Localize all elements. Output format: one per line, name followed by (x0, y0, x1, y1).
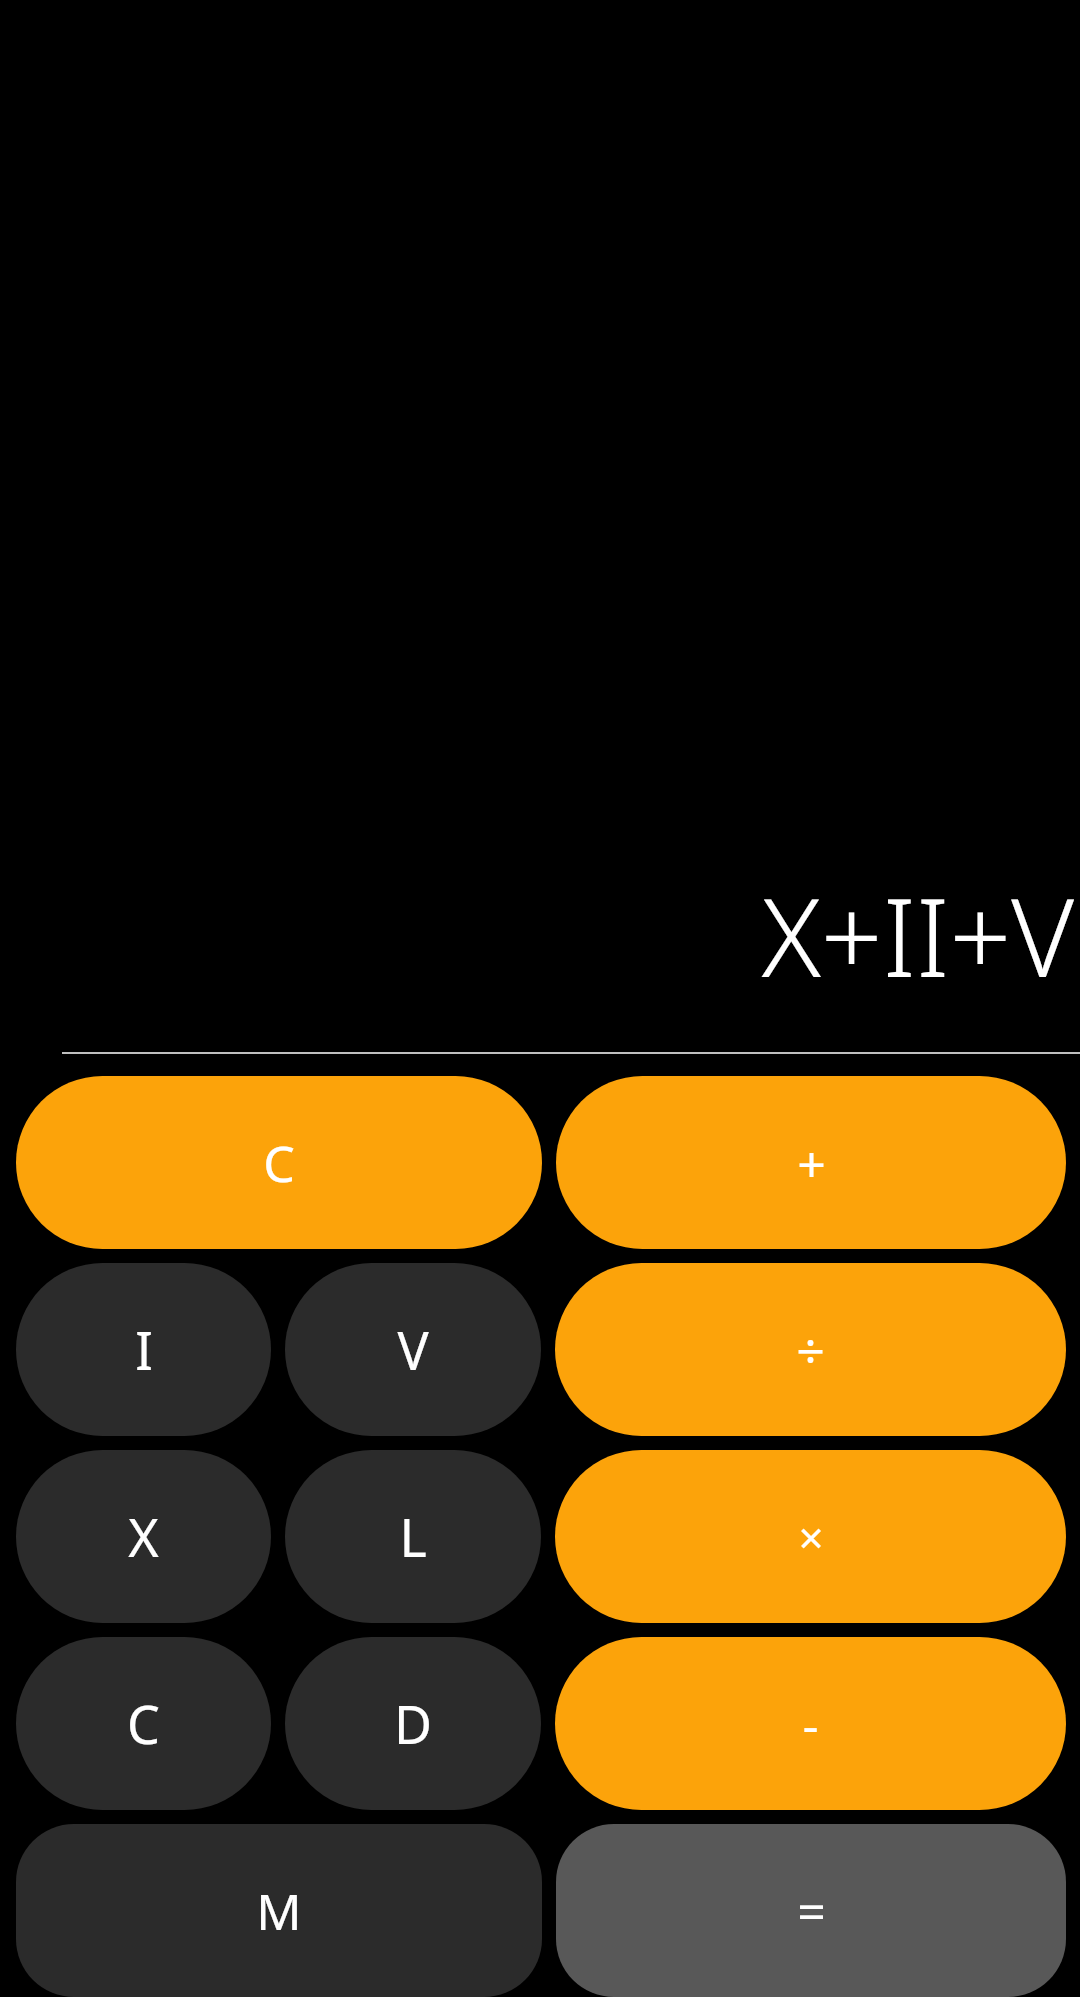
staticText: - (802, 1690, 819, 1758)
button[interactable]: C (16, 1637, 271, 1810)
button[interactable]: Equals (556, 1824, 1066, 1997)
staticText: C (263, 1129, 295, 1197)
staticText: + (797, 1129, 826, 1197)
button[interactable]: I (16, 1263, 271, 1436)
staticText: C (127, 1688, 160, 1759)
button[interactable]: C (16, 1076, 542, 1249)
staticText: M (256, 1877, 302, 1945)
button[interactable]: X (16, 1450, 271, 1623)
staticText: ÷ (796, 1316, 825, 1384)
staticText: X+II+V (761, 862, 1074, 1009)
staticText: D (394, 1688, 432, 1759)
staticText: X (128, 1501, 159, 1572)
button[interactable]: Plus (556, 1076, 1066, 1249)
button[interactable]: Multiply (555, 1450, 1066, 1623)
button[interactable]: Divide (555, 1263, 1066, 1436)
staticText: L (399, 1501, 427, 1572)
button[interactable]: V (285, 1263, 541, 1436)
button[interactable]: Minus (555, 1637, 1066, 1810)
button[interactable]: M (16, 1824, 542, 1997)
button[interactable]: L (285, 1450, 541, 1623)
button[interactable]: D (285, 1637, 541, 1810)
staticText: = (797, 1877, 826, 1945)
staticText: I (135, 1314, 153, 1385)
staticText: V (397, 1314, 429, 1385)
staticText: × (798, 1507, 824, 1567)
